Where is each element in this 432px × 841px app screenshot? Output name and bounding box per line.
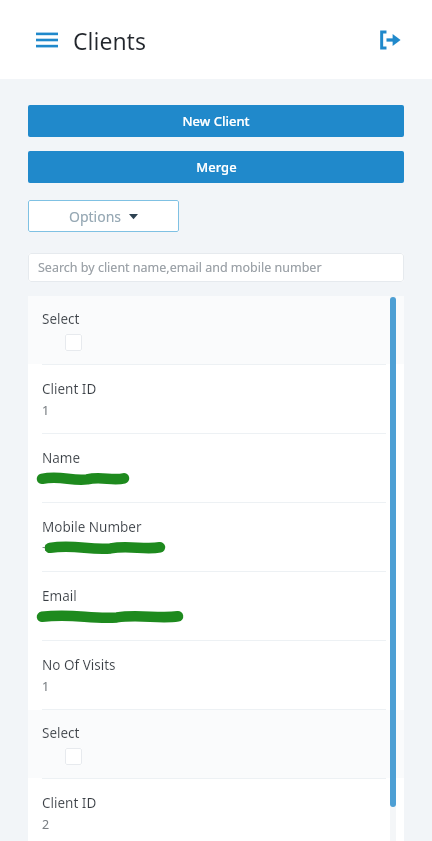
button[interactable]: Merge <box>28 151 404 183</box>
button[interactable]: Client ID <box>28 779 404 841</box>
staticText: Clients <box>73 25 146 56</box>
staticText: New Client <box>182 112 250 130</box>
button[interactable]: Select client <box>65 748 82 765</box>
button[interactable]: Client ID <box>28 365 404 433</box>
staticText: Mobile Number <box>42 518 142 536</box>
staticText: No Of Visits <box>42 656 116 674</box>
staticText: Search by client name,email and mobile n… <box>38 259 322 276</box>
staticText: Client ID <box>42 794 97 812</box>
button[interactable]: Search by client name,email and mobile n… <box>28 253 404 282</box>
button[interactable]: Email <box>28 572 404 640</box>
button[interactable]: Mobile Number <box>28 503 404 571</box>
staticText: 1 <box>42 678 50 695</box>
staticText: Email <box>42 587 77 605</box>
button[interactable]: Sign out <box>372 22 408 58</box>
button[interactable]: Select client <box>65 334 82 351</box>
button[interactable]: Select <box>28 710 404 778</box>
button[interactable]: Select <box>28 296 404 364</box>
staticText: Select <box>42 724 80 742</box>
staticText: 2 <box>42 816 50 833</box>
staticText: + <box>42 539 50 556</box>
button[interactable]: Options <box>28 200 179 232</box>
button[interactable]: Menu <box>30 23 64 57</box>
staticText: Select <box>42 310 80 328</box>
staticText: Client ID <box>42 380 97 398</box>
staticText: Name <box>42 449 81 467</box>
staticText: Options <box>69 207 122 226</box>
button[interactable]: No Of Visits <box>28 641 404 709</box>
button[interactable]: Name <box>28 434 404 502</box>
button[interactable]: New Client <box>28 105 404 137</box>
staticText: 1 <box>42 402 50 419</box>
staticText: Merge <box>196 158 237 176</box>
